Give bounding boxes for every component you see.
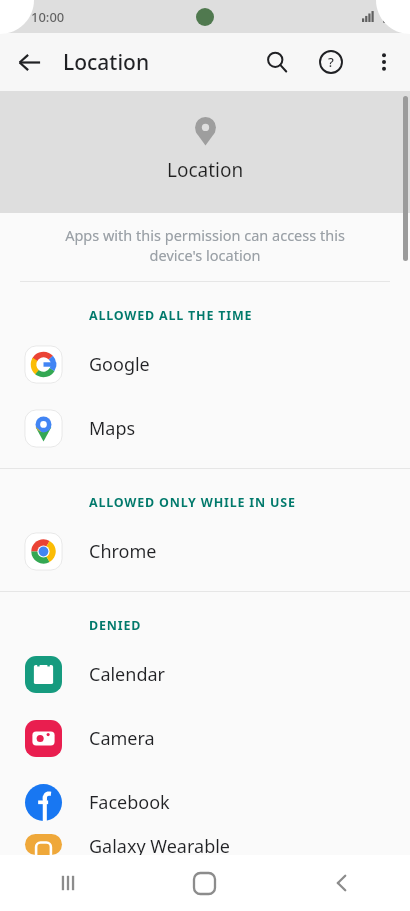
staticText: Maps [89, 416, 136, 441]
staticText: Camera [89, 726, 155, 751]
staticText: ? [328, 53, 334, 71]
button[interactable]: Search [250, 35, 304, 89]
button[interactable]: Back [0, 33, 58, 91]
button[interactable]: Back [273, 855, 410, 911]
staticText: Google [89, 352, 150, 377]
button[interactable]: Home [136, 855, 273, 911]
button[interactable]: More options [358, 36, 410, 88]
button[interactable]: Galaxy Wearable [0, 834, 410, 855]
staticText: ALLOWED ONLY WHILE IN USE [89, 494, 296, 511]
staticText: Galaxy Wearable [89, 834, 230, 855]
staticText: DENIED [89, 617, 142, 634]
button[interactable]: Facebook [0, 770, 410, 834]
button[interactable]: Help [304, 35, 358, 89]
button[interactable]: Google [0, 332, 410, 396]
staticText: Chrome [89, 539, 157, 564]
staticText: ALLOWED ALL THE TIME [89, 307, 253, 324]
button[interactable]: Calendar [0, 642, 410, 706]
staticText: Location [63, 48, 150, 77]
button[interactable]: Maps [0, 396, 410, 460]
staticText: Apps with this permission can access thi… [20, 225, 390, 266]
staticText: Location [167, 157, 244, 183]
button[interactable]: Camera [0, 706, 410, 770]
staticText: 10:00 [31, 8, 65, 26]
button[interactable]: Recents [0, 855, 136, 911]
button[interactable]: Chrome [0, 519, 410, 583]
staticText: Facebook [89, 790, 170, 815]
staticText: Calendar [89, 662, 165, 687]
